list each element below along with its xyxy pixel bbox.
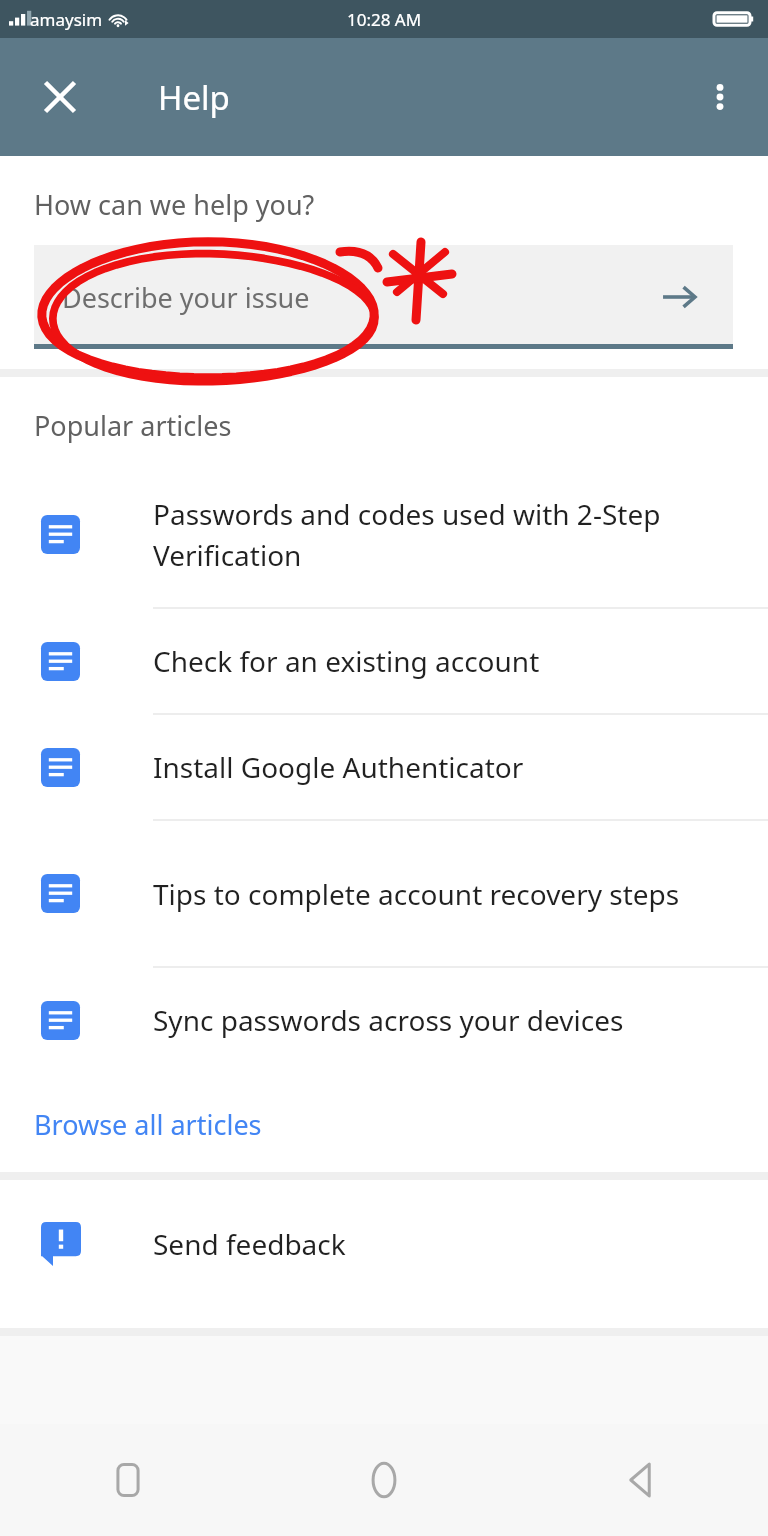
staticText: Describe your issue	[62, 279, 310, 316]
button[interactable]: Tips to complete account recovery steps	[0, 821, 768, 966]
button[interactable]: Send feedback	[0, 1180, 768, 1308]
staticText: Check for an existing account	[153, 642, 540, 680]
staticText: Popular articles	[34, 407, 232, 444]
staticText: Sync passwords across your devices	[153, 1001, 624, 1039]
staticText: Install Google Authenticator	[153, 748, 524, 786]
button[interactable]: Check for an existing account	[0, 609, 768, 713]
button[interactable]: Recents	[0, 1424, 256, 1536]
staticText: Send feedback	[153, 1225, 346, 1263]
staticText: amaysim	[30, 8, 103, 31]
button[interactable]: Browse all articles	[0, 1076, 768, 1172]
staticText: Browse all articles	[34, 1106, 262, 1143]
button[interactable]: Passwords and codes used with 2-Step Ver…	[0, 462, 768, 607]
staticText: 10:28 AM	[347, 8, 422, 31]
staticText: Tips to complete account recovery steps	[153, 875, 680, 913]
button[interactable]: Search	[655, 273, 703, 321]
button[interactable]: Install Google Authenticator	[0, 715, 768, 819]
button[interactable]: Close	[20, 57, 100, 137]
staticText: How can we help you?	[34, 186, 315, 223]
button[interactable]: Describe your issue	[34, 245, 733, 349]
button[interactable]: More options	[680, 57, 760, 137]
staticText: Help	[158, 75, 230, 120]
button[interactable]: Sync passwords across your devices	[0, 968, 768, 1072]
staticText: Passwords and codes used with 2-Step Ver…	[153, 495, 720, 574]
button[interactable]: Home	[256, 1424, 512, 1536]
button[interactable]: Back	[512, 1424, 768, 1536]
